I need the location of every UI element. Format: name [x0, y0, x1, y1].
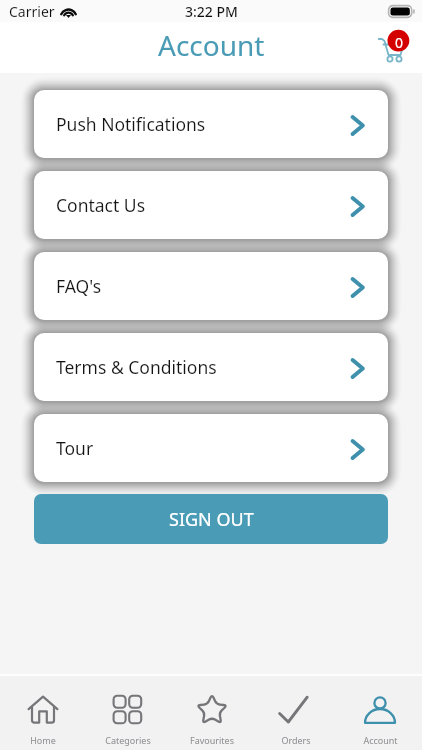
- button[interactable]: Home: [0, 676, 85, 750]
- staticText: Home: [30, 734, 56, 746]
- button[interactable]: Contact Us: [34, 171, 388, 239]
- button[interactable]: Cart: [375, 28, 415, 64]
- staticText: Terms & Conditions: [56, 355, 217, 379]
- button[interactable]: Tour: [34, 414, 388, 482]
- button[interactable]: SIGN OUT: [34, 494, 388, 544]
- staticText: Account: [363, 734, 398, 746]
- staticText: Contact Us: [56, 193, 146, 217]
- staticText: Tour: [56, 436, 94, 460]
- button[interactable]: Push Notifications: [34, 90, 388, 158]
- staticText: Favourites: [190, 734, 234, 746]
- staticText: Orders: [281, 734, 311, 746]
- button[interactable]: FAQ's: [34, 252, 388, 320]
- staticText: Account: [158, 26, 265, 64]
- button[interactable]: Categories: [85, 676, 170, 750]
- button[interactable]: Terms & Conditions: [34, 333, 388, 401]
- staticText: Push Notifications: [56, 112, 206, 136]
- staticText: 3:22 PM: [185, 2, 238, 21]
- button[interactable]: Account: [338, 676, 422, 750]
- staticText: 0: [395, 33, 404, 52]
- button[interactable]: Favourites: [170, 676, 254, 750]
- staticText: FAQ's: [56, 274, 102, 298]
- button[interactable]: Orders: [254, 676, 338, 750]
- staticText: Categories: [105, 734, 151, 746]
- staticText: Carrier: [9, 2, 55, 21]
- staticText: SIGN OUT: [169, 507, 254, 532]
